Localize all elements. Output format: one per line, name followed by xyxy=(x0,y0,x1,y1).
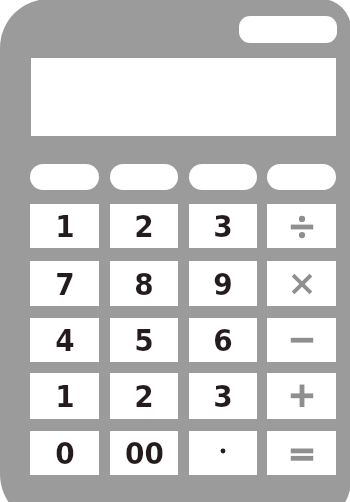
button[interactable]: 9 xyxy=(189,261,257,306)
button[interactable]: Solar panel xyxy=(239,16,337,43)
staticText: 1 xyxy=(55,378,75,414)
staticText: 3 xyxy=(213,378,233,414)
staticText: 4 xyxy=(55,322,75,358)
button[interactable]: Multiply xyxy=(267,261,336,306)
button[interactable]: 8 xyxy=(110,261,178,306)
button[interactable]: 7 xyxy=(30,261,99,306)
staticText: 7 xyxy=(55,266,75,302)
button[interactable]: 0 xyxy=(30,431,99,475)
button[interactable]: Memory minus xyxy=(189,164,257,190)
button[interactable]: 1 xyxy=(30,373,99,419)
button[interactable]: 3 xyxy=(189,373,257,419)
button[interactable]: 4 xyxy=(30,318,99,362)
staticText: 3 xyxy=(213,208,233,244)
button[interactable]: 6 xyxy=(189,318,257,362)
staticText: 00 xyxy=(125,435,164,471)
button[interactable]: Divide xyxy=(267,204,336,248)
button[interactable]: Memory plus xyxy=(267,164,336,190)
staticText: 1 xyxy=(55,208,75,244)
staticText: 0 xyxy=(55,435,75,471)
staticText: 8 xyxy=(134,266,154,302)
staticText: 2 xyxy=(134,208,154,244)
button[interactable]: 5 xyxy=(110,318,178,362)
button[interactable]: 1 xyxy=(30,204,99,248)
button[interactable]: Decimal point xyxy=(189,431,257,475)
button[interactable]: Minus xyxy=(267,318,336,362)
button[interactable]: 00 xyxy=(110,431,178,475)
button[interactable]: 2 xyxy=(110,204,178,248)
button[interactable]: 3 xyxy=(189,204,257,248)
button[interactable]: Plus xyxy=(267,373,336,419)
button[interactable]: Memory recall xyxy=(110,164,178,190)
staticText: 5 xyxy=(134,322,154,358)
button[interactable]: 2 xyxy=(110,373,178,419)
staticText: 6 xyxy=(213,322,233,358)
button[interactable]: Equals xyxy=(267,431,336,475)
staticText: 2 xyxy=(134,378,154,414)
button[interactable]: Memory clear xyxy=(30,164,99,190)
staticText: 9 xyxy=(213,266,233,302)
